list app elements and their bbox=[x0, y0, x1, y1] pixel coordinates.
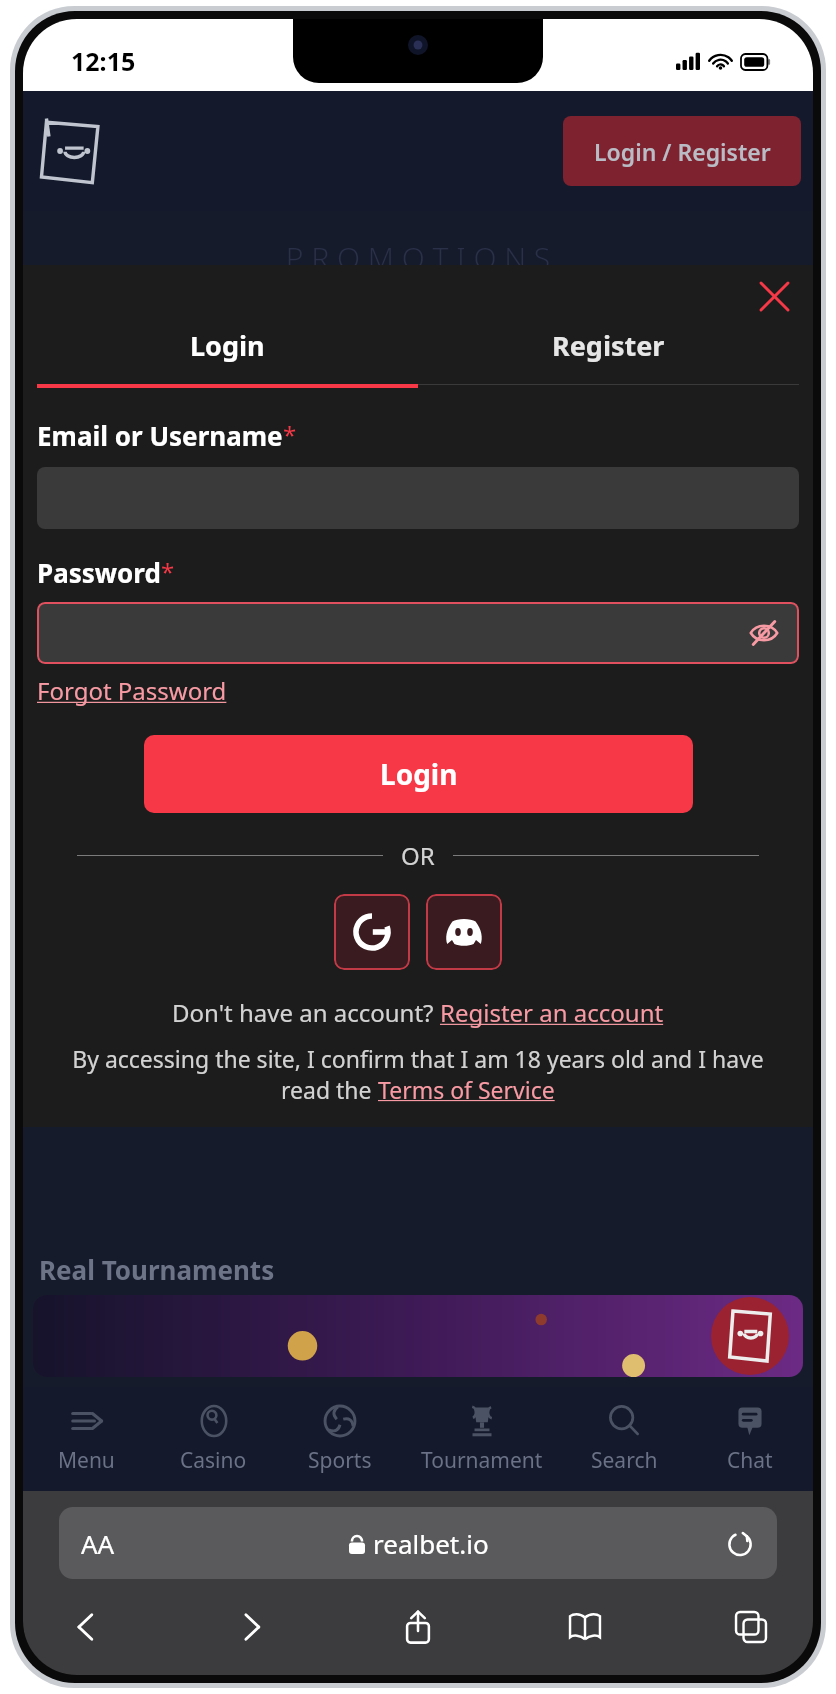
staticText: Casino bbox=[180, 1446, 247, 1475]
staticText: OR bbox=[401, 839, 435, 872]
staticText: realbet.io bbox=[373, 1526, 489, 1561]
button[interactable]: Text size options bbox=[59, 1507, 777, 1579]
staticText: Terms of Service bbox=[378, 1074, 555, 1105]
button[interactable]: Forward bbox=[224, 1599, 280, 1655]
button[interactable]: Sign in with Google bbox=[334, 894, 410, 970]
button[interactable]: Text size options bbox=[81, 1526, 115, 1561]
button[interactable]: Bookmarks bbox=[557, 1599, 613, 1655]
button[interactable]: Tournament bbox=[403, 1387, 561, 1491]
button[interactable]: Login bbox=[37, 327, 418, 388]
staticText: P R O M O T I O N S bbox=[23, 237, 813, 278]
staticText: Login / Register bbox=[594, 136, 771, 167]
staticText: Search bbox=[591, 1446, 658, 1475]
button[interactable]: Tabs bbox=[723, 1599, 779, 1655]
button[interactable]: Login / Register bbox=[563, 116, 801, 186]
button[interactable]: Search bbox=[561, 1387, 687, 1491]
staticText: Forgot Password bbox=[37, 674, 227, 707]
button[interactable]: Sign in with Discord bbox=[426, 894, 502, 970]
staticText: AA bbox=[81, 1526, 115, 1561]
button[interactable]: Forgot Password bbox=[37, 674, 227, 707]
button[interactable]: Register an account bbox=[440, 996, 664, 1029]
button[interactable]: Terms of Service bbox=[378, 1074, 555, 1105]
button[interactable]: Register bbox=[418, 327, 799, 385]
staticText: Register an account bbox=[440, 996, 664, 1029]
staticText: Menu bbox=[58, 1446, 115, 1475]
button[interactable]: Show password bbox=[743, 612, 785, 654]
button[interactable]: Show password bbox=[37, 602, 799, 664]
button[interactable]: Login bbox=[144, 735, 693, 813]
staticText: By accessing the site, I confirm that I … bbox=[37, 1043, 799, 1074]
staticText: 12:15 bbox=[71, 44, 136, 78]
staticText: Login bbox=[380, 755, 458, 793]
staticText: Tournament bbox=[421, 1446, 543, 1475]
button[interactable]: Sports bbox=[277, 1387, 403, 1491]
button[interactable]: Chat bbox=[687, 1387, 813, 1491]
staticText: read the bbox=[281, 1074, 378, 1105]
staticText: Login bbox=[190, 327, 265, 364]
staticText: Real Tournaments bbox=[39, 1252, 275, 1287]
staticText: Don't have an account? bbox=[172, 996, 440, 1029]
button[interactable]: Menu bbox=[23, 1387, 150, 1491]
staticText: Password bbox=[37, 555, 161, 590]
button[interactable]: Casino bbox=[150, 1387, 277, 1491]
staticText: Email or Username bbox=[37, 418, 283, 453]
button[interactable]: Back bbox=[57, 1599, 113, 1655]
staticText: Chat bbox=[727, 1446, 773, 1475]
staticText: * bbox=[161, 555, 175, 588]
button[interactable]: Close bbox=[751, 273, 797, 319]
button[interactable]: Share bbox=[390, 1599, 446, 1655]
button[interactable]: Reload bbox=[723, 1526, 757, 1560]
staticText: Sports bbox=[308, 1446, 372, 1475]
staticText: * bbox=[283, 418, 297, 451]
staticText: Register bbox=[552, 327, 665, 364]
